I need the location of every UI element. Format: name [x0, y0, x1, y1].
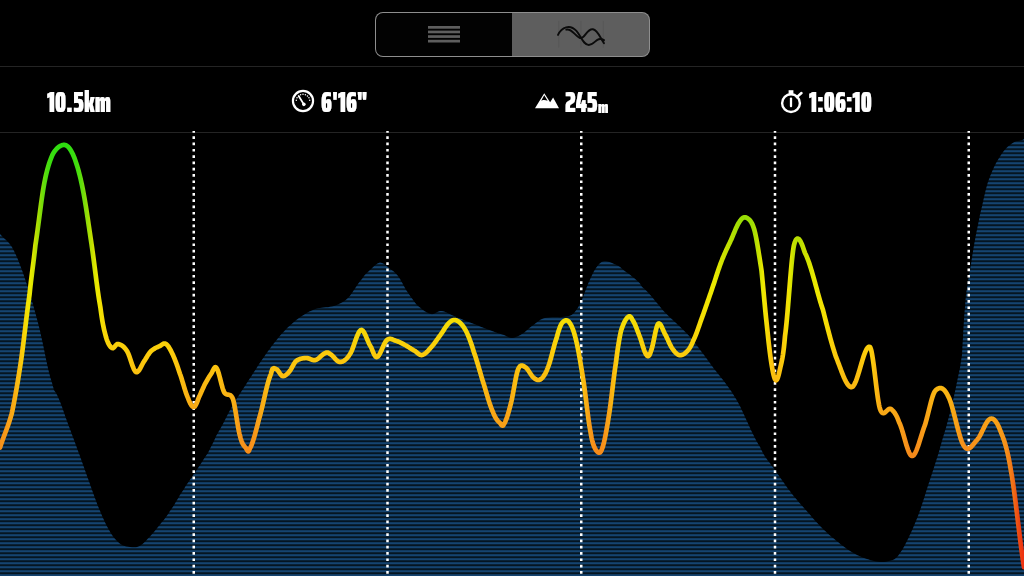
staticText: 245 [565, 80, 598, 124]
staticText: 10.5 [47, 80, 84, 124]
button[interactable]: Elevation [535, 69, 609, 134]
button[interactable]: Distance [47, 69, 111, 134]
staticText: 1:06:10 [809, 80, 872, 124]
staticText: km [84, 80, 111, 124]
button[interactable]: List view [376, 13, 512, 56]
staticText: 6'16" [321, 80, 368, 124]
staticText: m [598, 93, 609, 121]
button[interactable]: Chart view [512, 13, 649, 56]
button[interactable]: Pace [291, 69, 368, 134]
button[interactable]: Duration [779, 69, 872, 134]
